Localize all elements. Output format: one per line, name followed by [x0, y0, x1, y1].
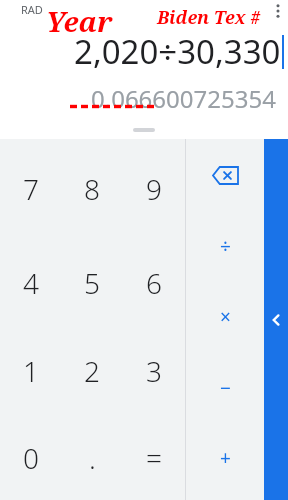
- button[interactable]: 5: [61, 239, 123, 327]
- staticText: 0: [23, 439, 39, 477]
- button[interactable]: 3: [123, 327, 185, 415]
- button[interactable]: RAD: [21, 2, 43, 17]
- staticText: 0.066600725354: [91, 82, 276, 115]
- button[interactable]: 8: [61, 139, 123, 239]
- staticText: =: [146, 439, 162, 477]
- button[interactable]: 1: [0, 327, 61, 415]
- button[interactable]: 2: [61, 327, 123, 415]
- staticText: 9: [146, 170, 162, 208]
- staticText: ÷: [220, 233, 231, 259]
- button[interactable]: Multiply: [186, 281, 264, 353]
- button[interactable]: =: [123, 415, 185, 500]
- button[interactable]: 0: [0, 415, 61, 500]
- staticText: 2,020÷30,330: [74, 29, 281, 74]
- button[interactable]: Add: [186, 423, 264, 493]
- staticText: 1: [23, 352, 39, 390]
- button[interactable]: 4: [0, 239, 61, 327]
- staticText: 6: [146, 264, 162, 302]
- staticText: .: [89, 439, 96, 477]
- staticText: 7: [23, 170, 39, 208]
- button[interactable]: Backspace: [186, 139, 264, 211]
- staticText: +: [220, 445, 231, 471]
- staticText: Biden Tex #: [157, 5, 261, 30]
- button[interactable]: Subtract: [186, 353, 264, 423]
- staticText: ×: [220, 304, 231, 330]
- button[interactable]: 9: [123, 139, 185, 239]
- staticText: 3: [146, 352, 162, 390]
- button[interactable]: Expand history: [133, 128, 155, 132]
- staticText: 4: [23, 264, 39, 302]
- staticText: 5: [84, 264, 100, 302]
- button[interactable]: Divide: [186, 211, 264, 281]
- staticText: 8: [84, 170, 100, 208]
- button[interactable]: More options: [268, 0, 288, 22]
- staticText: −: [220, 375, 231, 401]
- button[interactable]: 7: [0, 139, 61, 239]
- button[interactable]: .: [61, 415, 123, 500]
- button[interactable]: 6: [123, 239, 185, 327]
- staticText: Year: [46, 2, 113, 40]
- staticText: 2: [84, 352, 100, 390]
- button[interactable]: Open advanced pad: [264, 139, 288, 500]
